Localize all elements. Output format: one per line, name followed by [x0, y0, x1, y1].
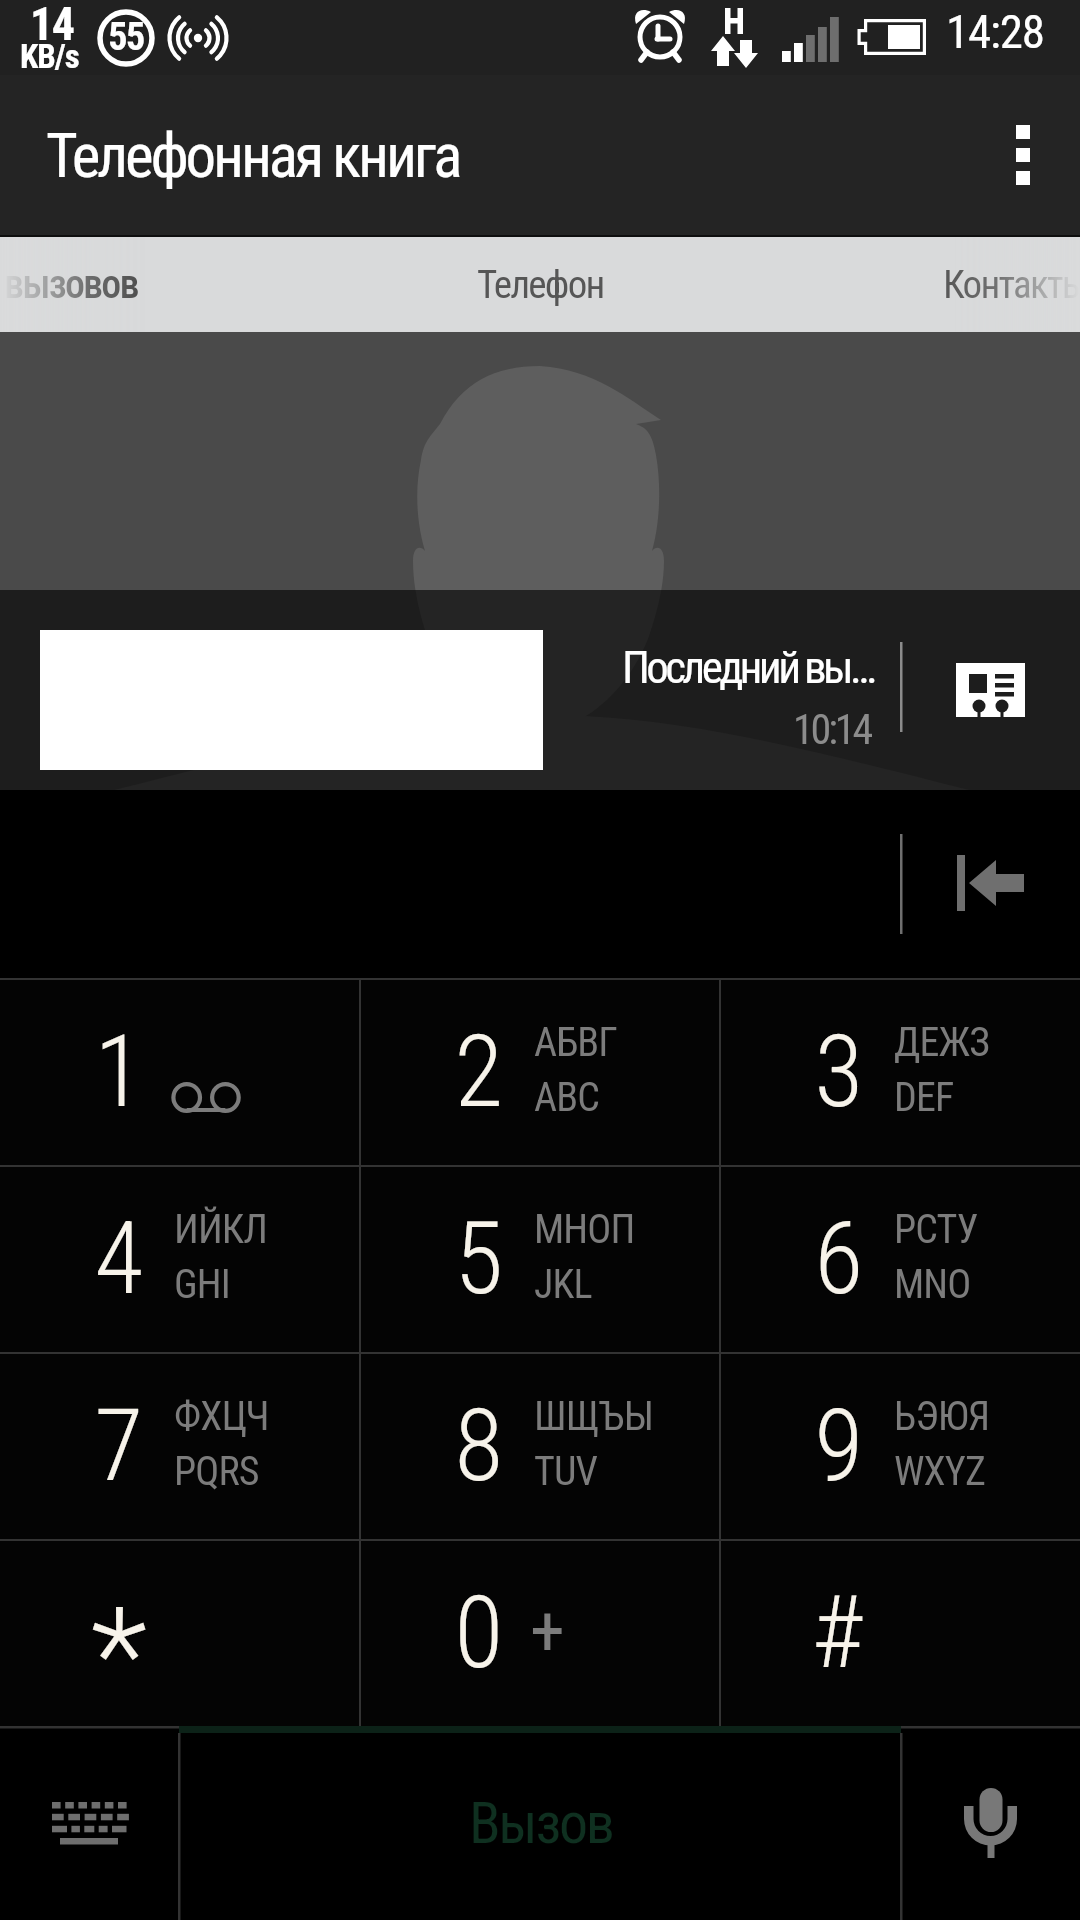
staticText: 7: [0, 1387, 143, 1504]
button[interactable]: 6: [720, 1165, 1080, 1352]
staticText: ШЩЪЫ: [534, 1393, 654, 1440]
button[interactable]: 7: [0, 1352, 360, 1539]
staticText: 9: [720, 1387, 863, 1504]
staticText: 6: [720, 1200, 863, 1317]
button[interactable]: Вызов: [179, 1726, 901, 1920]
staticText: Контакты: [943, 262, 1080, 308]
button[interactable]: Keyboard: [0, 1726, 179, 1920]
staticText: *: [0, 1579, 147, 1734]
button[interactable]: 4: [0, 1165, 360, 1352]
staticText: MNO: [894, 1261, 971, 1308]
button[interactable]: 1: [0, 978, 360, 1165]
button[interactable]: Voice search: [901, 1726, 1080, 1920]
button[interactable]: 0: [360, 1539, 720, 1726]
staticText: GHI: [174, 1261, 230, 1308]
staticText: ФХЦЧ: [174, 1393, 269, 1440]
button[interactable]: Контакты: [943, 237, 1080, 332]
staticText: 2: [360, 1013, 503, 1130]
button[interactable]: More options: [966, 75, 1080, 235]
button[interactable]: #: [720, 1539, 1080, 1726]
staticText: ДЕЖЗ: [894, 1019, 990, 1066]
staticText: 1: [0, 1013, 143, 1130]
staticText: 14: [30, 0, 74, 51]
button[interactable]: вызовов: [0, 237, 170, 332]
button[interactable]: 9: [720, 1352, 1080, 1539]
staticText: #: [720, 1574, 863, 1691]
staticText: 5: [360, 1200, 503, 1317]
staticText: ИЙКЛ: [174, 1206, 268, 1253]
staticText: вызовов: [4, 261, 138, 308]
button[interactable]: *: [0, 1539, 360, 1726]
button[interactable]: 5: [360, 1165, 720, 1352]
staticText: 10:14: [640, 705, 870, 754]
staticText: 8: [360, 1387, 503, 1504]
button[interactable]: 3: [720, 978, 1080, 1165]
staticText: 14:28: [946, 4, 1044, 59]
staticText: JKL: [534, 1261, 592, 1308]
staticText: DEF: [894, 1074, 954, 1121]
button[interactable]: 2: [360, 978, 720, 1165]
staticText: PQRS: [174, 1448, 259, 1495]
staticText: TUV: [534, 1448, 598, 1495]
staticText: WXYZ: [894, 1448, 985, 1495]
staticText: 55: [97, 15, 155, 60]
staticText: KB/s: [20, 37, 79, 76]
staticText: 3: [720, 1013, 863, 1130]
button[interactable]: Contact card: [920, 630, 1060, 750]
staticText: ЬЭЮЯ: [894, 1393, 990, 1440]
staticText: РСТУ: [894, 1206, 978, 1253]
staticText: Вызов: [469, 1789, 613, 1857]
button[interactable]: Backspace: [902, 790, 1080, 978]
staticText: 4: [0, 1200, 143, 1317]
staticText: ABC: [534, 1074, 599, 1121]
staticText: 0: [360, 1574, 503, 1691]
staticText: МНОП: [534, 1206, 635, 1253]
staticText: Последний вы…: [622, 641, 873, 694]
button[interactable]: Телефон: [477, 262, 604, 308]
staticText: АБВГ: [534, 1019, 617, 1066]
staticText: +: [530, 1590, 565, 1672]
staticText: Телефонная книга: [46, 120, 460, 191]
button[interactable]: 8: [360, 1352, 720, 1539]
